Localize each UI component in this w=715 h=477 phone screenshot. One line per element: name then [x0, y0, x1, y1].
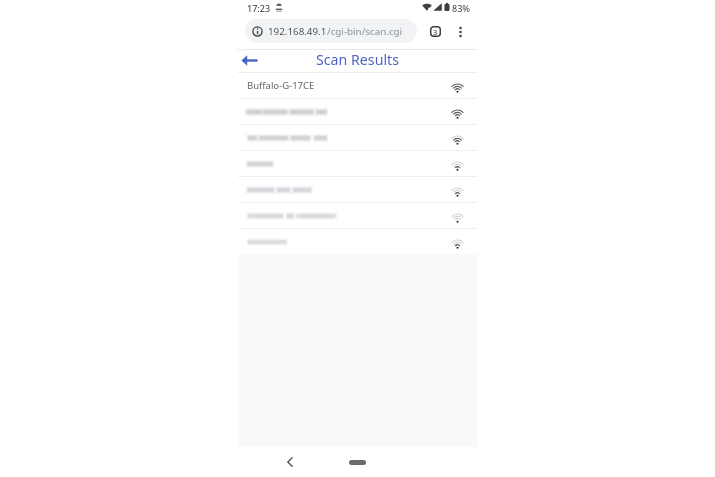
staticText: Scan Results	[316, 50, 399, 69]
button[interactable]: Home	[349, 460, 366, 465]
button[interactable]: Switch tabs	[430, 26, 441, 37]
button[interactable]	[238, 99, 477, 124]
staticText: Buffalo-G-17CE	[247, 79, 315, 92]
staticText: 83%	[452, 2, 470, 14]
button[interactable]	[238, 125, 477, 150]
button[interactable]	[238, 203, 477, 228]
button[interactable]	[238, 229, 477, 254]
button[interactable]: Back	[280, 452, 300, 472]
button[interactable]: 192.168.49.1	[245, 19, 417, 43]
staticText: 3	[433, 27, 438, 37]
staticText: 192.168.49.1	[268, 25, 327, 38]
button[interactable]: More options	[452, 24, 468, 40]
button[interactable]	[238, 151, 477, 176]
button[interactable]: Back	[239, 50, 260, 71]
staticText: 17:23	[247, 2, 271, 14]
button[interactable]	[238, 177, 477, 202]
button[interactable]: Buffalo-G-17CE	[238, 73, 477, 98]
staticText: /cgi-bin/scan.cgi	[327, 25, 403, 38]
